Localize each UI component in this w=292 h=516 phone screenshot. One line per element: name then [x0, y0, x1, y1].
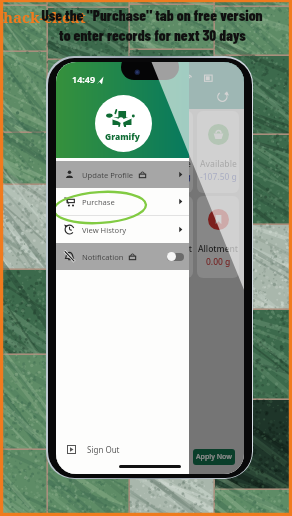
staticText: -107.50 g: [200, 171, 237, 183]
button[interactable]: Apply Now: [193, 449, 235, 465]
staticText: 0.00 g: [206, 256, 231, 268]
button[interactable]: Available: [61, 111, 102, 193]
staticText: Allotment: [152, 243, 193, 255]
button[interactable]: Purchase: [56, 188, 189, 215]
staticText: Gramify: [105, 131, 140, 142]
button[interactable]: Update Profile: [56, 161, 189, 188]
staticText: Sign Out: [87, 444, 120, 455]
staticText: 0.00 g: [160, 256, 185, 268]
staticText: Available: [108, 158, 145, 170]
staticText: View History: [82, 225, 127, 235]
staticText: 14:49: [72, 73, 96, 85]
staticText: hack-cheat: [3, 7, 86, 27]
button[interactable]: Allotment: [151, 196, 193, 278]
button[interactable]: Notification: [56, 243, 189, 270]
button[interactable]: Allotment: [197, 196, 239, 278]
staticText: 0.00 g: [114, 256, 139, 268]
other: Notifications toggle: [167, 252, 184, 261]
staticText: Notification: [82, 252, 124, 262]
staticText: 0.00 g: [69, 256, 94, 268]
staticText: Available: [154, 158, 191, 170]
staticText: Use the "Purchase" tab on free version: [41, 6, 263, 24]
button[interactable]: Available: [151, 111, 193, 193]
staticText: to enter records for next 30 days: [59, 26, 246, 44]
staticText: Available: [63, 158, 100, 170]
staticText: -107.50 g: [154, 171, 191, 183]
staticText: Allotment: [61, 243, 102, 255]
button[interactable]: Available: [197, 111, 239, 193]
button[interactable]: View History: [56, 216, 189, 243]
button[interactable]: Allotment: [61, 196, 102, 278]
staticText: -107.50 g: [63, 171, 100, 183]
staticText: Available: [200, 158, 237, 170]
staticText: Allotment: [198, 243, 239, 255]
button[interactable]: Allotment: [106, 196, 147, 278]
staticText: Purchase: [82, 197, 115, 207]
staticText: -107.50 g: [108, 171, 145, 183]
button[interactable]: Sign Out: [56, 436, 189, 462]
button[interactable]: Available: [106, 111, 147, 193]
staticText: Update Profile: [82, 170, 134, 180]
staticText: Allotment: [106, 243, 147, 255]
staticText: Apply Now: [196, 452, 232, 462]
